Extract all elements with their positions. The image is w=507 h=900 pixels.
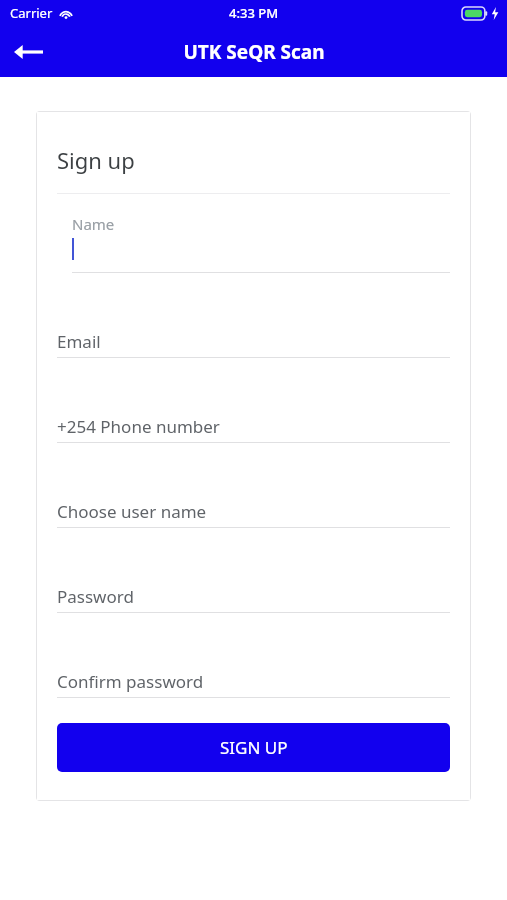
button[interactable]: Back <box>0 26 56 77</box>
staticText: UTK SeQR Scan <box>183 39 325 65</box>
button[interactable]: Email <box>57 330 450 358</box>
button[interactable]: SIGN UP <box>57 723 450 772</box>
staticText: Sign up <box>57 145 135 175</box>
button[interactable]: Confirm password <box>57 670 450 698</box>
staticText: Confirm password <box>57 670 204 693</box>
button[interactable]: Name <box>72 214 450 273</box>
staticText: Name <box>72 214 115 234</box>
staticText: Carrier <box>10 4 53 22</box>
button[interactable]: +254 Phone number <box>57 415 450 443</box>
staticText: 4:33 PM <box>229 4 279 22</box>
staticText: Password <box>57 585 134 608</box>
staticText: +254 Phone number <box>57 415 220 438</box>
button[interactable]: Choose user name <box>57 500 450 528</box>
staticText: Email <box>57 330 101 353</box>
button[interactable]: Password <box>57 585 450 613</box>
staticText: SIGN UP <box>220 736 288 759</box>
staticText: Choose user name <box>57 500 207 523</box>
